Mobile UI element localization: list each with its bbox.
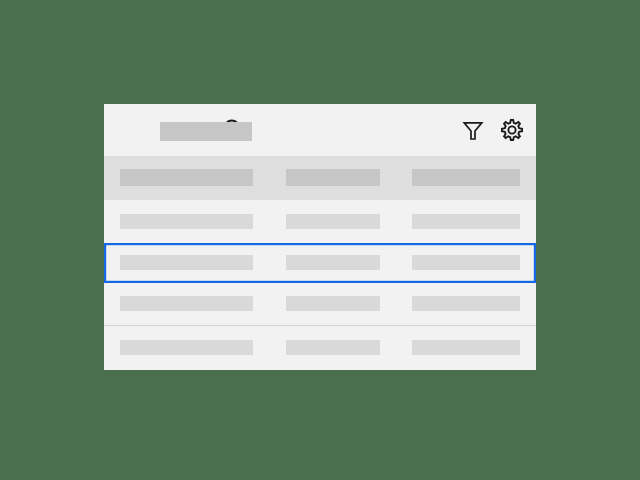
button[interactable]: Filter <box>456 113 490 147</box>
button[interactable] <box>104 283 536 325</box>
button[interactable] <box>104 200 536 243</box>
button[interactable] <box>104 326 536 370</box>
button[interactable] <box>104 156 536 200</box>
button[interactable]: Settings <box>495 113 529 147</box>
button[interactable] <box>104 243 536 283</box>
button[interactable]: Search <box>216 112 252 148</box>
